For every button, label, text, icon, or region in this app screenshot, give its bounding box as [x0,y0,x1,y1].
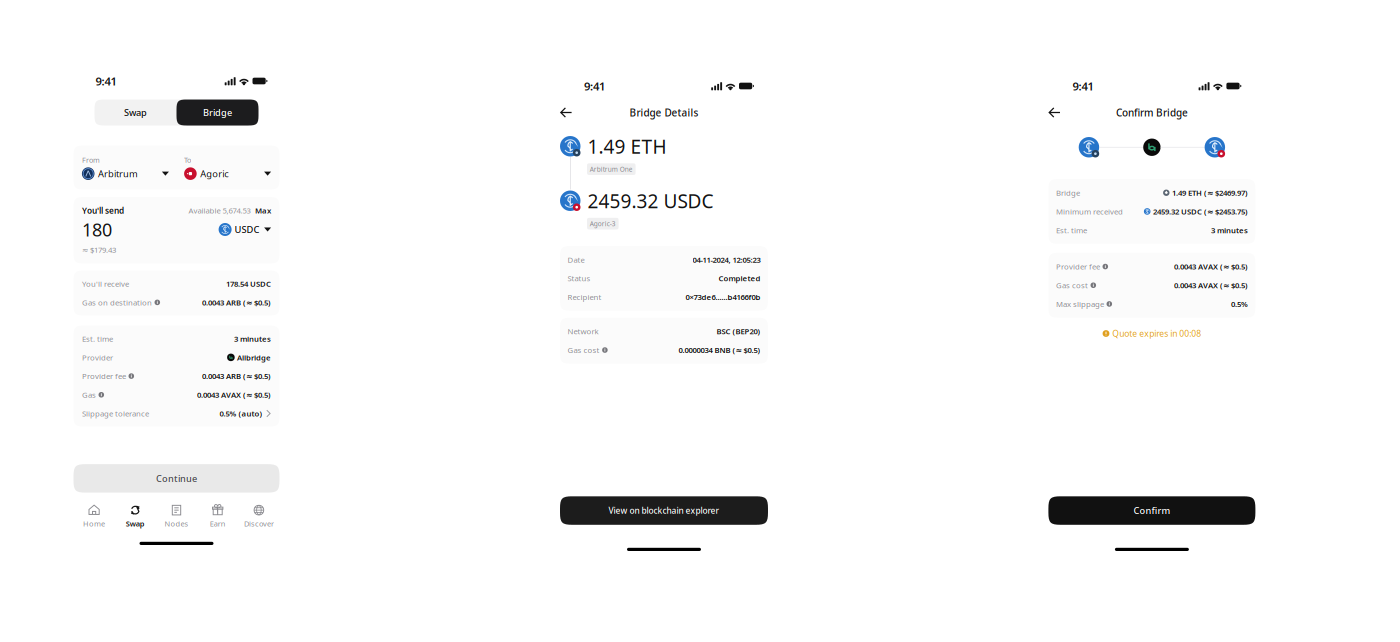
staticText: 04-11-2024, 12:05:23 [692,254,760,265]
staticText: 9:41 [1072,78,1093,94]
staticText: 0×73de6......b4166f0b [685,292,760,302]
staticText: Agoric [200,167,228,180]
staticText: Gas [82,389,96,400]
button[interactable]: From [82,155,169,180]
staticText: Minimum received [1056,206,1123,217]
staticText: You'll send [82,205,124,216]
staticText: Agoric-3 [590,219,616,228]
staticText: Completed [718,273,760,284]
button[interactable]: Swap [94,99,258,125]
staticText: 0.0043 AVAX (≈ $0.5) [197,389,271,400]
button[interactable]: Continue [73,464,279,493]
button[interactable]: Discover [238,504,279,529]
staticText: 0.5% (auto) [220,408,263,419]
staticText: 0.0043 AVAX (≈ $0.5) [1174,280,1248,290]
staticText: Est. time [1056,225,1087,235]
staticText: You'll receive [82,278,129,289]
staticText: Discover [244,519,274,529]
staticText: Gas cost [1056,280,1088,290]
staticText: Swap [124,106,147,119]
staticText: BSC (BEP20) [716,326,760,337]
staticText: 0.5% [1231,299,1248,309]
button[interactable]: Slippage tolerance [82,404,271,423]
staticText: 2459.32 USDC (≈ $2453.75) [1153,206,1248,217]
staticText: Swap [126,519,145,529]
staticText: Network [567,326,598,337]
button[interactable]: To [184,155,271,180]
button[interactable]: Back [1048,107,1061,118]
staticText: Continue [156,472,197,485]
staticText: Nodes [164,519,188,529]
staticText: Max [255,205,271,216]
staticText: USDC [235,223,260,236]
staticText: 3 minutes [234,333,271,344]
staticText: Confirm [1133,504,1170,517]
button[interactable]: Earn [197,504,238,529]
staticText: View on blockchain explorer [608,505,719,516]
staticText: Max slippage [1056,299,1104,309]
button[interactable]: USDC [219,223,271,236]
staticText: 0.0000034 BNB (≈ $0.5) [678,345,760,355]
staticText: 1.49 ETH (≈ $2469.97) [1172,187,1248,198]
staticText: Arbitrum [98,167,138,180]
button[interactable]: Home [73,504,115,529]
staticText: Est. time [82,333,113,344]
staticText: Earn [210,519,226,529]
staticText: Recipient [567,292,601,302]
staticText: Provider fee [1056,261,1100,272]
button[interactable]: View on blockchain explorer [560,496,768,525]
staticText: Bridge [1056,187,1080,198]
staticText: Allbridge [237,352,271,363]
staticText: 178.54 USDC [226,278,271,289]
button[interactable]: Nodes [156,504,197,529]
staticText: Provider [82,352,113,363]
button[interactable]: Confirm [1048,496,1255,525]
staticText: Bridge Details [629,106,698,119]
button[interactable]: Swap [115,504,156,529]
staticText: From [82,155,100,165]
staticText: 3 minutes [1211,225,1248,235]
staticText: 0.0043 AVAX (≈ $0.5) [1174,261,1248,272]
staticText: Status [567,273,590,284]
staticText: To [184,155,191,165]
button[interactable]: Back [560,107,572,118]
staticText: Slippage tolerance [82,408,149,419]
staticText: Confirm Bridge [1116,106,1188,119]
staticText: Home [83,519,105,529]
staticText: 9:41 [584,78,605,94]
staticText: Gas cost [567,345,599,355]
staticText: 1.49 ETH [587,133,666,159]
staticText: Bridge [203,106,232,119]
staticText: Provider fee [82,371,126,381]
staticText: Quote expires in 00:08 [1112,328,1201,339]
staticText: 2459.32 USDC [587,188,713,214]
staticText: 180 [82,217,112,242]
staticText: 9:41 [95,73,116,89]
staticText: Available 5,674.53 [189,205,251,216]
staticText: Arbitrum One [590,165,633,174]
staticText: ≈ $179.43 [82,244,116,255]
staticText: Gas on destination [82,297,152,308]
staticText: 0.0043 ARB (≈ $0.5) [202,297,271,308]
staticText: Date [567,254,584,265]
staticText: 0.0043 ARB (≈ $0.5) [202,371,271,381]
button[interactable]: Max [251,205,271,216]
